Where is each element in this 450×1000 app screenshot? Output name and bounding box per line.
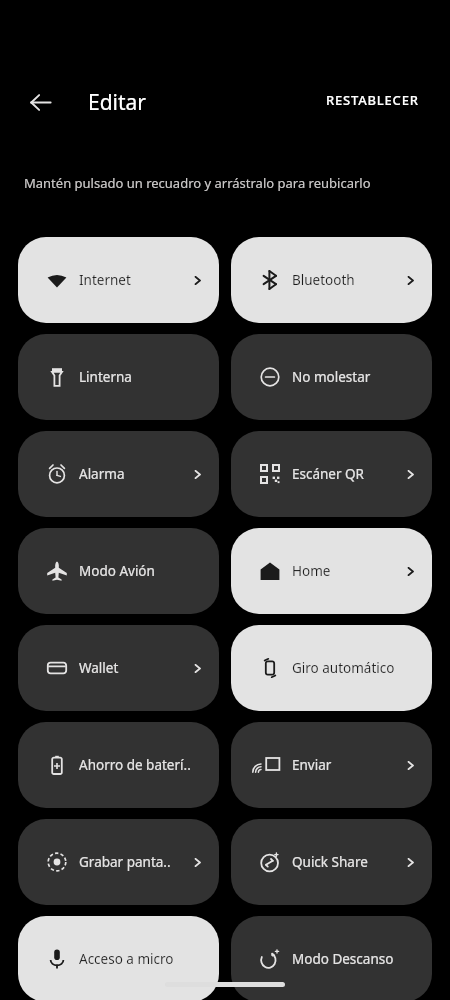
button[interactable]: No molestar — [231, 334, 432, 420]
staticText: Giro automático — [292, 659, 395, 677]
staticText: Grabar panta.. — [79, 853, 171, 871]
button[interactable]: Bluetooth — [231, 237, 432, 323]
staticText: Quick Share — [292, 853, 368, 871]
staticText: Modo Descanso — [292, 950, 394, 968]
button[interactable]: Acceso a micro — [18, 916, 219, 1000]
button[interactable]: Grabar panta.. — [18, 819, 219, 905]
button[interactable]: Modo Avión — [18, 528, 219, 614]
button[interactable]: Atrás — [18, 80, 62, 124]
staticText: Alarma — [79, 465, 125, 483]
button[interactable]: Enviar — [231, 722, 432, 808]
staticText: Mantén pulsado un recuadro y arrástralo … — [24, 174, 371, 192]
staticText: Escáner QR — [292, 465, 365, 483]
button[interactable]: Ahorro de baterí.. — [18, 722, 219, 808]
button[interactable]: Internet — [18, 237, 219, 323]
button[interactable]: Linterna — [18, 334, 219, 420]
staticText: Bluetooth — [292, 271, 355, 289]
button[interactable]: Home — [231, 528, 432, 614]
button[interactable]: Alarma — [18, 431, 219, 517]
staticText: Editar — [88, 88, 147, 117]
button[interactable]: Giro automático — [231, 625, 432, 711]
staticText: Enviar — [292, 756, 332, 774]
staticText: Modo Avión — [79, 562, 155, 580]
staticText: Internet — [79, 271, 131, 289]
staticText: Home — [292, 562, 331, 580]
button[interactable]: Escáner QR — [231, 431, 432, 517]
staticText: RESTABLECER — [326, 91, 419, 109]
staticText: No molestar — [292, 368, 371, 386]
staticText: Ahorro de baterí.. — [79, 756, 191, 774]
button[interactable]: RESTABLECER — [320, 86, 425, 114]
staticText: Linterna — [79, 368, 132, 386]
staticText: Wallet — [79, 659, 119, 677]
staticText: Acceso a micro — [79, 950, 174, 968]
button[interactable]: Quick Share — [231, 819, 432, 905]
button[interactable]: Wallet — [18, 625, 219, 711]
button[interactable]: Modo Descanso — [231, 916, 432, 1000]
